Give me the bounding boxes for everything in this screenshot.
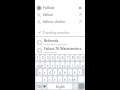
staticText: y xyxy=(62,64,64,68)
button[interactable]: 2 xyxy=(40,54,45,62)
staticText: p xyxy=(82,64,84,68)
other: Remove xyxy=(78,6,82,10)
button[interactable]: Result xyxy=(35,46,85,54)
other: Insert query xyxy=(78,20,82,24)
button[interactable]: Emoji xyxy=(42,83,47,90)
staticText: m xyxy=(73,78,76,82)
button[interactable]: i xyxy=(70,62,75,69)
button[interactable]: t xyxy=(55,62,60,69)
other: Result xyxy=(37,48,42,53)
button[interactable]: 0 xyxy=(80,54,85,62)
button[interactable]: Space xyxy=(47,83,73,90)
staticText: k xyxy=(74,71,76,75)
staticText: z xyxy=(44,78,46,82)
staticText: 6 xyxy=(62,56,64,60)
button[interactable]: 9 xyxy=(75,54,80,62)
button[interactable]: 5 xyxy=(55,54,60,62)
button[interactable]: 1 xyxy=(35,54,40,62)
button[interactable]: s xyxy=(42,69,47,76)
staticText: l xyxy=(79,71,80,75)
other: Search xyxy=(37,13,41,17)
staticText: fallout xyxy=(43,12,78,17)
button[interactable]: m xyxy=(72,76,77,83)
staticText: t xyxy=(57,64,58,68)
staticText: f xyxy=(54,71,55,75)
staticText: fallout shelter xyxy=(43,19,78,24)
staticText: Fallout xyxy=(43,5,78,10)
staticText: n xyxy=(69,78,71,82)
other: Recent search xyxy=(37,6,41,10)
staticText: a xyxy=(39,71,41,75)
staticText: r xyxy=(52,64,54,68)
staticText: d xyxy=(49,71,51,75)
staticText: w xyxy=(41,64,44,68)
button[interactable]: y xyxy=(60,62,65,69)
staticText: 3 xyxy=(47,56,49,60)
button[interactable]: Recent search xyxy=(35,4,85,11)
button[interactable]: v xyxy=(57,76,62,83)
button[interactable]: j xyxy=(67,69,72,76)
staticText: g xyxy=(59,71,61,75)
staticText: b xyxy=(64,78,66,82)
button[interactable]: k xyxy=(72,69,77,76)
button[interactable]: Period xyxy=(73,83,78,90)
button[interactable]: n xyxy=(67,76,72,83)
staticText: 5 xyxy=(57,56,59,60)
other: Search xyxy=(37,20,41,24)
staticText: 0 xyxy=(82,56,84,60)
button[interactable]: d xyxy=(47,69,52,76)
button[interactable]: b xyxy=(62,76,67,83)
staticText: v xyxy=(59,78,61,82)
staticText: Video game xyxy=(44,51,57,54)
staticText: q xyxy=(37,64,39,68)
button[interactable]: 6 xyxy=(60,54,65,62)
other: Result xyxy=(37,40,42,45)
button[interactable]: r xyxy=(50,62,55,69)
button[interactable]: l xyxy=(77,69,82,76)
staticText: e xyxy=(47,64,49,68)
staticText: s xyxy=(44,71,46,75)
staticText: 4 xyxy=(52,56,54,60)
button[interactable]: g xyxy=(57,69,62,76)
staticText: j xyxy=(69,71,70,75)
button[interactable]: ?123 xyxy=(35,83,42,90)
button[interactable]: x xyxy=(47,76,52,83)
button[interactable]: w xyxy=(40,62,45,69)
staticText: 8 xyxy=(72,56,74,60)
button[interactable]: q xyxy=(35,62,40,69)
button[interactable]: h xyxy=(62,69,67,76)
button[interactable]: c xyxy=(52,76,57,83)
button[interactable]: e xyxy=(45,62,50,69)
staticText: ?123 xyxy=(36,85,42,89)
button[interactable]: Search xyxy=(35,11,85,18)
button[interactable]: Shift xyxy=(35,76,42,83)
staticText: Trending searches xyxy=(43,31,70,35)
button[interactable]: f xyxy=(52,69,57,76)
staticText: 1 xyxy=(37,56,39,60)
other: Insert query xyxy=(78,13,82,17)
button[interactable]: p xyxy=(80,62,85,69)
staticText: . xyxy=(75,85,76,89)
button[interactable]: o xyxy=(75,62,80,69)
staticText: 9 xyxy=(77,56,79,60)
staticText: u xyxy=(67,64,69,68)
button[interactable]: 8 xyxy=(70,54,75,62)
button[interactable]: Search xyxy=(35,18,85,25)
staticText: English xyxy=(56,85,65,89)
staticText: Video game company xyxy=(44,43,68,46)
button[interactable]: 7 xyxy=(65,54,70,62)
button[interactable]: 3 xyxy=(45,54,50,62)
button[interactable]: Search xyxy=(78,83,85,90)
button[interactable]: 4 xyxy=(50,54,55,62)
staticText: o xyxy=(77,64,79,68)
staticText: 2 xyxy=(42,56,44,60)
button[interactable]: u xyxy=(65,62,70,69)
staticText: Fallout 76: Wastelanders xyxy=(44,47,82,51)
button[interactable]: Backspace xyxy=(77,76,85,83)
staticText: x xyxy=(49,78,51,82)
staticText: c xyxy=(54,78,56,82)
staticText: i xyxy=(72,64,73,68)
button[interactable]: Result xyxy=(35,38,85,46)
button[interactable]: z xyxy=(42,76,47,83)
button[interactable]: a xyxy=(37,69,42,76)
